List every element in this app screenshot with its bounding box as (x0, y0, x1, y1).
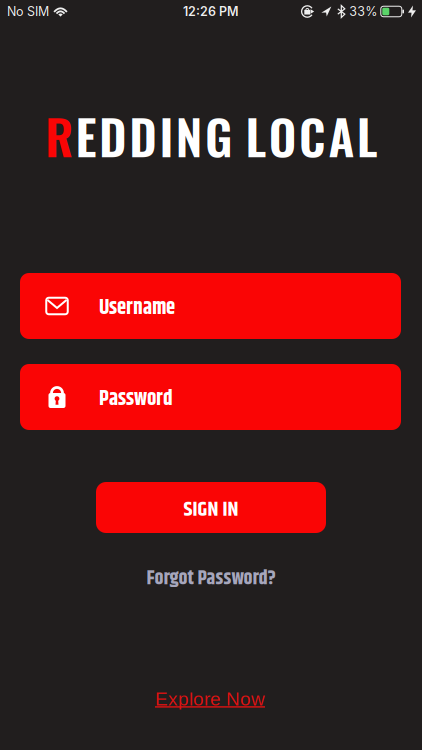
button[interactable]: Explore Now (155, 688, 265, 710)
staticText: Username (99, 292, 175, 324)
staticText: N (176, 100, 203, 171)
staticText: D (129, 100, 157, 171)
button[interactable]: Password (20, 364, 401, 430)
staticText: L (245, 100, 266, 171)
staticText: 33% (349, 4, 377, 19)
staticText: L (357, 100, 378, 171)
staticText: No SIM (7, 4, 49, 19)
staticText: SIGN IN (183, 494, 238, 526)
staticText: 12:26 PM (183, 4, 239, 19)
staticText: C (299, 100, 326, 171)
staticText: E (76, 100, 97, 171)
button[interactable]: SIGN IN (96, 482, 326, 533)
staticText: I (159, 100, 173, 171)
staticText: D (99, 100, 127, 171)
staticText: Explore Now (155, 688, 265, 710)
staticText: Password (99, 383, 173, 415)
staticText: Forgot Password? (146, 563, 275, 594)
staticText: A (328, 100, 354, 171)
button[interactable]: Forgot Password? (146, 563, 275, 594)
staticText: R (45, 100, 73, 171)
staticText: O (269, 100, 297, 171)
staticText: G (205, 100, 232, 171)
button[interactable]: Username (20, 273, 401, 339)
